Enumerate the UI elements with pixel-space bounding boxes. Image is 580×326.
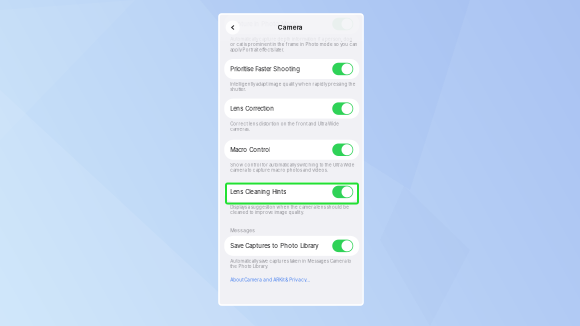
staticText: Intelligently adapt image quality when r… xyxy=(230,81,356,92)
staticText: Lens Cleaning Hints xyxy=(230,188,286,196)
button[interactable]: Lens Correction xyxy=(224,99,359,119)
button[interactable]: Back xyxy=(224,18,242,36)
button[interactable]: Capture in Photo Mode xyxy=(224,14,359,34)
staticText: Displays a suggestion when the camera le… xyxy=(230,204,349,215)
staticText: Camera xyxy=(278,24,303,31)
staticText: Prioritise Faster Shooting xyxy=(230,65,300,73)
staticText: Capture in Photo Mode xyxy=(230,20,297,28)
button[interactable]: Save Captures to Photo Library xyxy=(224,236,359,256)
button[interactable]: Lens Cleaning Hints xyxy=(224,182,359,202)
staticText: About Camera and ARKit & Privacy… xyxy=(230,277,310,282)
staticText: Save Captures to Photo Library xyxy=(230,242,318,249)
staticText: Correct lens distortion on the front and… xyxy=(230,121,339,132)
button[interactable]: Prioritise Faster Shooting xyxy=(224,59,359,79)
staticText: Messages xyxy=(230,228,255,233)
staticText: Automatically capture depth information … xyxy=(230,36,357,52)
staticText: Show control for automatically switching… xyxy=(230,162,355,173)
button[interactable]: About Camera and ARKit & Privacy… xyxy=(224,276,316,283)
staticText: Automatically save captures taken in Mes… xyxy=(230,258,351,269)
staticText: Macro Control xyxy=(230,146,270,153)
button[interactable]: Macro Control xyxy=(224,140,359,160)
staticText: Lens Correction xyxy=(230,105,274,112)
